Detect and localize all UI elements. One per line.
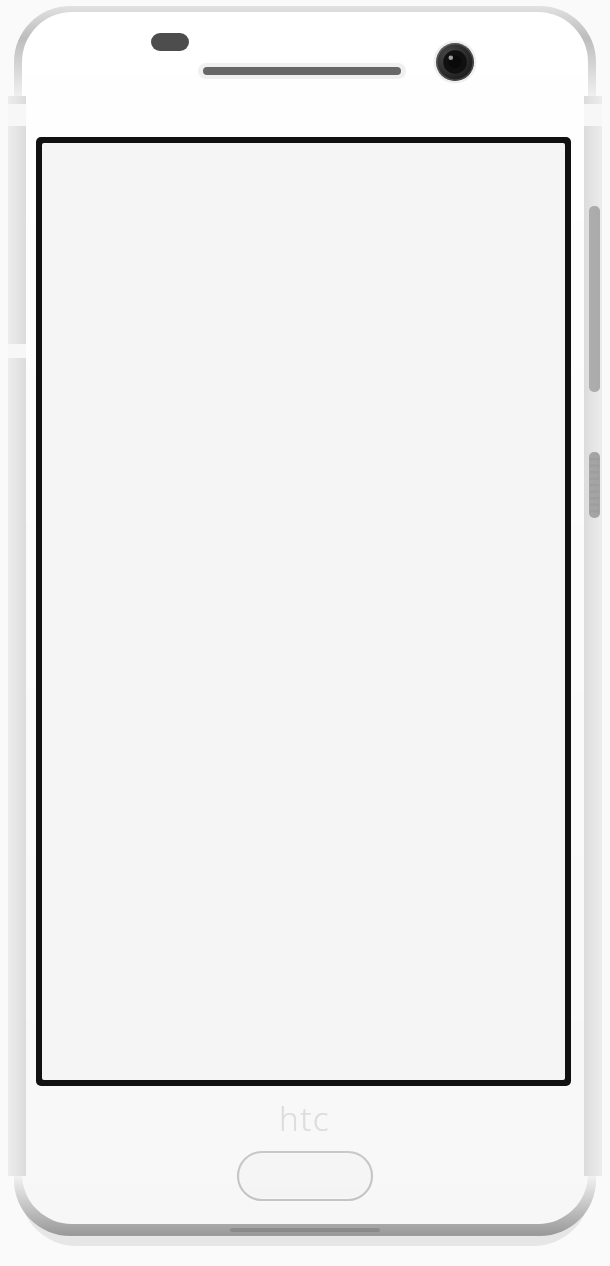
staticText: htc: [279, 1096, 331, 1141]
button[interactable]: Phone display: [36, 137, 571, 1086]
button[interactable]: Volume: [586, 452, 602, 518]
button[interactable]: Front camera: [434, 41, 476, 83]
button[interactable]: Power: [586, 206, 602, 392]
button[interactable]: Home: [238, 1152, 372, 1200]
